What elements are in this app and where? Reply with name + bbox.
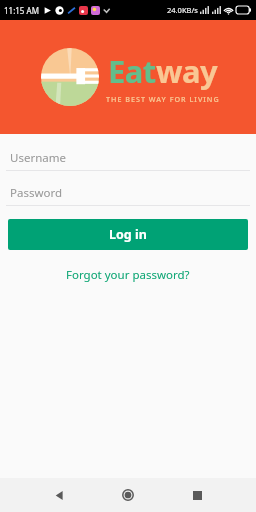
- staticText: way: [156, 50, 218, 92]
- staticText: Password: [10, 185, 63, 201]
- button[interactable]: Log in: [8, 219, 248, 250]
- button[interactable]: Password: [0, 183, 256, 206]
- staticText: 24.0KB/s: [167, 5, 198, 15]
- staticText: Forgot your password?: [66, 267, 190, 283]
- button[interactable]: Recent apps: [184, 482, 210, 508]
- button[interactable]: Username: [0, 148, 256, 171]
- staticText: Eat: [108, 50, 156, 92]
- staticText: THE BEST WAY FOR LIVING: [106, 94, 220, 104]
- button[interactable]: Home: [115, 482, 141, 508]
- staticText: Username: [10, 150, 66, 166]
- staticText: Log in: [109, 226, 147, 243]
- button[interactable]: Back: [46, 482, 72, 508]
- staticText: 11:15 AM: [4, 5, 39, 16]
- button[interactable]: Forgot your password?: [0, 265, 256, 285]
